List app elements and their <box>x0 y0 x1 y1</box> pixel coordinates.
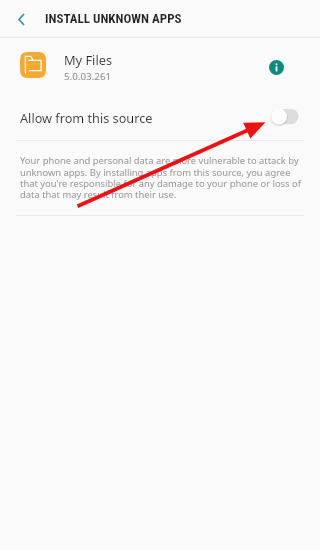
staticText: My Files <box>64 51 113 68</box>
staticText: INSTALL UNKNOWN APPS <box>45 11 182 26</box>
staticText: Allow from this source <box>20 109 283 126</box>
button[interactable]: My Files <box>0 38 320 92</box>
button[interactable]: App info <box>261 52 291 82</box>
button[interactable]: Navigate up <box>0 0 42 36</box>
staticText: Your phone and personal data are more vu… <box>20 154 302 201</box>
staticText: 5.0.03.261 <box>64 70 112 83</box>
button[interactable]: Allow from this source toggle <box>283 105 320 131</box>
button[interactable]: Allow from this source <box>0 95 320 140</box>
